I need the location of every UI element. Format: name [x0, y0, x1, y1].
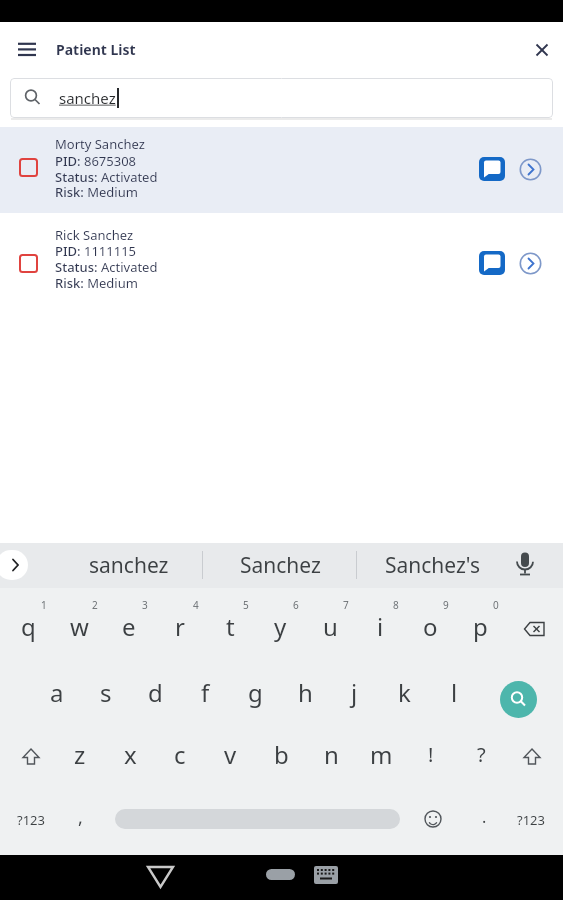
button[interactable]: [518, 613, 552, 645]
button[interactable]: g: [232, 670, 278, 714]
button[interactable]: [14, 40, 42, 60]
button[interactable]: [115, 809, 400, 829]
staticText: n: [324, 738, 339, 771]
button[interactable]: sanchez: [59, 548, 199, 582]
button[interactable]: .: [469, 802, 499, 832]
button[interactable]: l: [431, 670, 477, 714]
button[interactable]: m: [358, 732, 404, 776]
staticText: l: [451, 676, 458, 709]
staticText: f: [201, 676, 210, 709]
staticText: c: [174, 738, 186, 771]
button[interactable]: [516, 741, 548, 773]
button[interactable]: [519, 158, 542, 181]
staticText: b: [274, 738, 289, 771]
staticText: s: [100, 676, 112, 709]
button[interactable]: v: [207, 732, 253, 776]
button[interactable]: [19, 158, 38, 177]
button[interactable]: b: [258, 732, 304, 776]
staticText: sanchez: [59, 88, 116, 108]
button[interactable]: j: [331, 670, 377, 714]
button[interactable]: r: [157, 604, 203, 648]
staticText: 8: [393, 598, 399, 612]
button[interactable]: p: [457, 604, 503, 648]
button[interactable]: c: [157, 732, 203, 776]
staticText: h: [298, 676, 313, 709]
button[interactable]: [512, 551, 538, 579]
staticText: !: [428, 741, 434, 768]
staticText: 1: [41, 598, 47, 612]
staticText: p: [473, 610, 488, 643]
staticText: Morty Sanchez: [55, 135, 145, 153]
button[interactable]: s: [83, 670, 129, 714]
button[interactable]: a: [34, 670, 80, 714]
button[interactable]: [479, 157, 505, 181]
button[interactable]: [422, 808, 444, 830]
staticText: e: [122, 610, 136, 643]
staticText: k: [398, 676, 411, 709]
button[interactable]: [19, 254, 38, 273]
button[interactable]: [530, 38, 554, 62]
staticText: o: [423, 610, 438, 643]
staticText: 0: [493, 598, 499, 612]
button[interactable]: [0, 127, 563, 213]
staticText: t: [226, 610, 235, 643]
staticText: 5: [243, 598, 249, 612]
button[interactable]: sanchez: [10, 78, 553, 118]
staticText: .: [482, 806, 487, 828]
button[interactable]: [266, 869, 295, 880]
button[interactable]: t: [207, 604, 253, 648]
button[interactable]: [479, 251, 505, 275]
button[interactable]: h: [282, 670, 328, 714]
staticText: Rick Sanchez: [55, 226, 134, 244]
button[interactable]: n: [308, 732, 354, 776]
staticText: ?123: [17, 811, 45, 829]
button[interactable]: Sanchez's: [363, 548, 503, 582]
staticText: g: [248, 676, 263, 709]
staticText: v: [224, 738, 237, 771]
button[interactable]: [0, 213, 563, 303]
staticText: ?: [477, 741, 486, 768]
button[interactable]: e: [106, 604, 152, 648]
button[interactable]: d: [132, 670, 178, 714]
button[interactable]: k: [381, 670, 427, 714]
button[interactable]: Sanchez: [210, 548, 350, 582]
button[interactable]: [15, 741, 47, 773]
button[interactable]: [313, 864, 339, 886]
staticText: i: [377, 610, 384, 643]
staticText: Risk: Medium: [55, 183, 138, 201]
staticText: Sanchez's: [385, 551, 481, 580]
staticText: Risk: Medium: [55, 274, 138, 292]
button[interactable]: ,: [60, 800, 100, 834]
button[interactable]: o: [407, 604, 453, 648]
staticText: 2: [92, 598, 98, 612]
staticText: 6: [293, 598, 299, 612]
staticText: 3: [142, 598, 148, 612]
button[interactable]: z: [57, 732, 103, 776]
staticText: a: [50, 676, 64, 709]
button[interactable]: [0, 550, 28, 580]
staticText: ?123: [517, 811, 545, 829]
button[interactable]: x: [107, 732, 153, 776]
button[interactable]: i: [357, 604, 403, 648]
button[interactable]: y: [257, 604, 303, 648]
button[interactable]: q: [5, 604, 51, 648]
staticText: x: [124, 738, 137, 771]
staticText: j: [351, 676, 358, 709]
staticText: Patient List: [56, 40, 136, 59]
button[interactable]: f: [182, 670, 228, 714]
staticText: d: [148, 676, 163, 709]
staticText: u: [323, 610, 338, 643]
button[interactable]: [142, 858, 180, 896]
button[interactable]: [500, 681, 537, 718]
staticText: y: [274, 610, 287, 643]
button[interactable]: [519, 252, 542, 275]
staticText: Status: Activated: [55, 258, 158, 276]
staticText: w: [70, 610, 89, 643]
button[interactable]: u: [307, 604, 353, 648]
button[interactable]: !: [408, 732, 454, 776]
button[interactable]: ?123: [506, 803, 556, 837]
staticText: 7: [343, 598, 349, 612]
button[interactable]: ?: [458, 732, 504, 776]
button[interactable]: ?123: [6, 803, 56, 837]
button[interactable]: w: [56, 604, 102, 648]
